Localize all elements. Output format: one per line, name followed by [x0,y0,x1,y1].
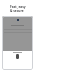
staticText: Fast, easy & secure [10,5,26,13]
